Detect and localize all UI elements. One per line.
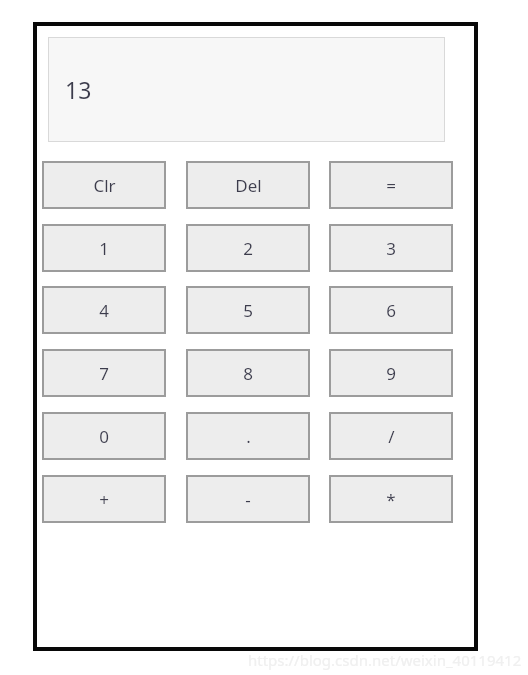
button[interactable]: Clr	[42, 161, 166, 209]
staticText: Del	[235, 174, 262, 197]
button[interactable]: 0	[42, 412, 166, 460]
staticText: 9	[386, 362, 396, 385]
staticText: 8	[243, 362, 253, 385]
button[interactable]: 9	[329, 349, 453, 397]
button[interactable]: .	[186, 412, 310, 460]
staticText: 7	[99, 362, 109, 385]
staticText: 6	[386, 299, 396, 322]
button[interactable]: *	[329, 475, 453, 523]
staticText: *	[386, 488, 396, 511]
staticText: https://blog.csdn.net/weixin_40119412	[248, 650, 522, 670]
button[interactable]: 1	[42, 224, 166, 272]
staticText: 4	[99, 299, 109, 322]
button[interactable]: 6	[329, 286, 453, 334]
staticText: 13	[65, 74, 92, 105]
staticText: 0	[99, 425, 109, 448]
staticText: Clr	[93, 174, 116, 197]
button[interactable]: 8	[186, 349, 310, 397]
staticText: +	[99, 488, 109, 511]
button[interactable]: 4	[42, 286, 166, 334]
button[interactable]: -	[186, 475, 310, 523]
staticText: 1	[99, 237, 109, 260]
button[interactable]: Del	[186, 161, 310, 209]
staticText: /	[388, 425, 395, 448]
staticText: .	[246, 425, 251, 448]
button[interactable]: =	[329, 161, 453, 209]
staticText: 5	[243, 299, 253, 322]
button[interactable]: 3	[329, 224, 453, 272]
button[interactable]: 2	[186, 224, 310, 272]
button[interactable]: 5	[186, 286, 310, 334]
staticText: -	[245, 488, 251, 511]
button[interactable]: /	[329, 412, 453, 460]
button[interactable]: 7	[42, 349, 166, 397]
button[interactable]: +	[42, 475, 166, 523]
staticText: 3	[386, 237, 396, 260]
staticText: 2	[243, 237, 253, 260]
staticText: =	[386, 174, 396, 197]
button[interactable]: 13	[48, 37, 445, 142]
